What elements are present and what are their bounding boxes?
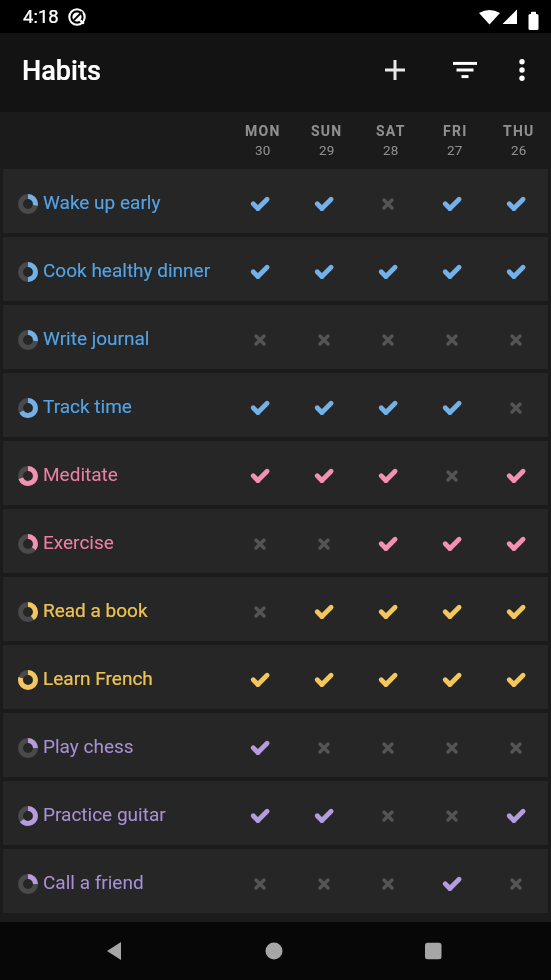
button[interactable]: Play chess bbox=[3, 713, 548, 777]
staticText: Practice guitar bbox=[43, 803, 166, 825]
button[interactable] bbox=[228, 237, 292, 301]
button[interactable] bbox=[484, 373, 548, 437]
button[interactable] bbox=[420, 577, 484, 641]
button[interactable]: Practice guitar bbox=[3, 781, 548, 845]
button[interactable] bbox=[254, 931, 294, 971]
button[interactable] bbox=[420, 713, 484, 777]
button[interactable]: Exercise bbox=[3, 509, 548, 573]
button[interactable] bbox=[356, 713, 420, 777]
button[interactable] bbox=[484, 713, 548, 777]
button[interactable] bbox=[484, 509, 548, 573]
staticText: 30 bbox=[255, 142, 271, 158]
button[interactable] bbox=[228, 849, 292, 913]
button[interactable] bbox=[228, 169, 292, 233]
button[interactable]: Wake up early bbox=[3, 169, 548, 233]
button[interactable] bbox=[95, 931, 135, 971]
button[interactable] bbox=[356, 645, 420, 709]
button[interactable] bbox=[292, 169, 356, 233]
button[interactable]: Read a book bbox=[3, 577, 548, 641]
button[interactable] bbox=[292, 373, 356, 437]
button[interactable] bbox=[356, 441, 420, 505]
staticText: Habits bbox=[22, 55, 101, 87]
button[interactable] bbox=[420, 849, 484, 913]
button[interactable] bbox=[356, 509, 420, 573]
button[interactable] bbox=[484, 441, 548, 505]
button[interactable] bbox=[292, 577, 356, 641]
button[interactable] bbox=[356, 577, 420, 641]
button[interactable] bbox=[356, 305, 420, 369]
button[interactable] bbox=[371, 46, 419, 94]
staticText: Cook healthy dinner bbox=[43, 259, 211, 281]
button[interactable] bbox=[484, 237, 548, 301]
button[interactable]: Call a friend bbox=[3, 849, 548, 913]
button[interactable] bbox=[420, 781, 484, 845]
staticText: 29 bbox=[319, 142, 335, 158]
button[interactable] bbox=[228, 373, 292, 437]
button[interactable] bbox=[420, 305, 484, 369]
staticText: Call a friend bbox=[43, 871, 144, 893]
button[interactable] bbox=[500, 48, 544, 92]
button[interactable] bbox=[228, 645, 292, 709]
button[interactable] bbox=[292, 305, 356, 369]
staticText: Exercise bbox=[43, 531, 114, 553]
button[interactable] bbox=[228, 781, 292, 845]
button[interactable] bbox=[292, 237, 356, 301]
button[interactable] bbox=[292, 645, 356, 709]
button[interactable] bbox=[292, 781, 356, 845]
button[interactable] bbox=[484, 849, 548, 913]
staticText: Track time bbox=[43, 395, 132, 417]
staticText: Write journal bbox=[43, 327, 150, 349]
button[interactable] bbox=[356, 169, 420, 233]
button[interactable] bbox=[356, 373, 420, 437]
button[interactable] bbox=[356, 237, 420, 301]
button[interactable] bbox=[420, 441, 484, 505]
button[interactable] bbox=[414, 931, 454, 971]
button[interactable] bbox=[228, 509, 292, 573]
button[interactable] bbox=[420, 237, 484, 301]
staticText: 4:18 bbox=[23, 6, 59, 28]
button[interactable] bbox=[484, 169, 548, 233]
button[interactable] bbox=[228, 305, 292, 369]
button[interactable] bbox=[484, 577, 548, 641]
staticText: 28 bbox=[383, 142, 399, 158]
staticText: SAT bbox=[376, 123, 406, 139]
staticText: Read a book bbox=[43, 599, 148, 621]
button[interactable] bbox=[420, 169, 484, 233]
staticText: Wake up early bbox=[43, 191, 161, 213]
button[interactable] bbox=[292, 509, 356, 573]
staticText: Learn French bbox=[43, 667, 153, 689]
staticText: THU bbox=[503, 123, 535, 139]
button[interactable] bbox=[292, 849, 356, 913]
button[interactable] bbox=[356, 849, 420, 913]
button[interactable] bbox=[228, 441, 292, 505]
button[interactable] bbox=[228, 577, 292, 641]
button[interactable] bbox=[441, 46, 489, 94]
staticText: SUN bbox=[311, 123, 343, 139]
staticText: Play chess bbox=[43, 735, 134, 757]
button[interactable] bbox=[484, 645, 548, 709]
button[interactable]: Track time bbox=[3, 373, 548, 437]
button[interactable] bbox=[292, 441, 356, 505]
staticText: FRI bbox=[443, 123, 468, 139]
staticText: Meditate bbox=[43, 463, 118, 485]
button[interactable] bbox=[420, 373, 484, 437]
staticText: MON bbox=[245, 123, 281, 139]
button[interactable] bbox=[420, 645, 484, 709]
button[interactable]: Learn French bbox=[3, 645, 548, 709]
button[interactable]: Cook healthy dinner bbox=[3, 237, 548, 301]
button[interactable] bbox=[484, 305, 548, 369]
button[interactable] bbox=[228, 713, 292, 777]
button[interactable] bbox=[356, 781, 420, 845]
button[interactable]: Meditate bbox=[3, 441, 548, 505]
button[interactable] bbox=[420, 509, 484, 573]
button[interactable]: Write journal bbox=[3, 305, 548, 369]
button[interactable] bbox=[484, 781, 548, 845]
staticText: 26 bbox=[511, 142, 527, 158]
button[interactable] bbox=[292, 713, 356, 777]
staticText: 27 bbox=[447, 142, 463, 158]
